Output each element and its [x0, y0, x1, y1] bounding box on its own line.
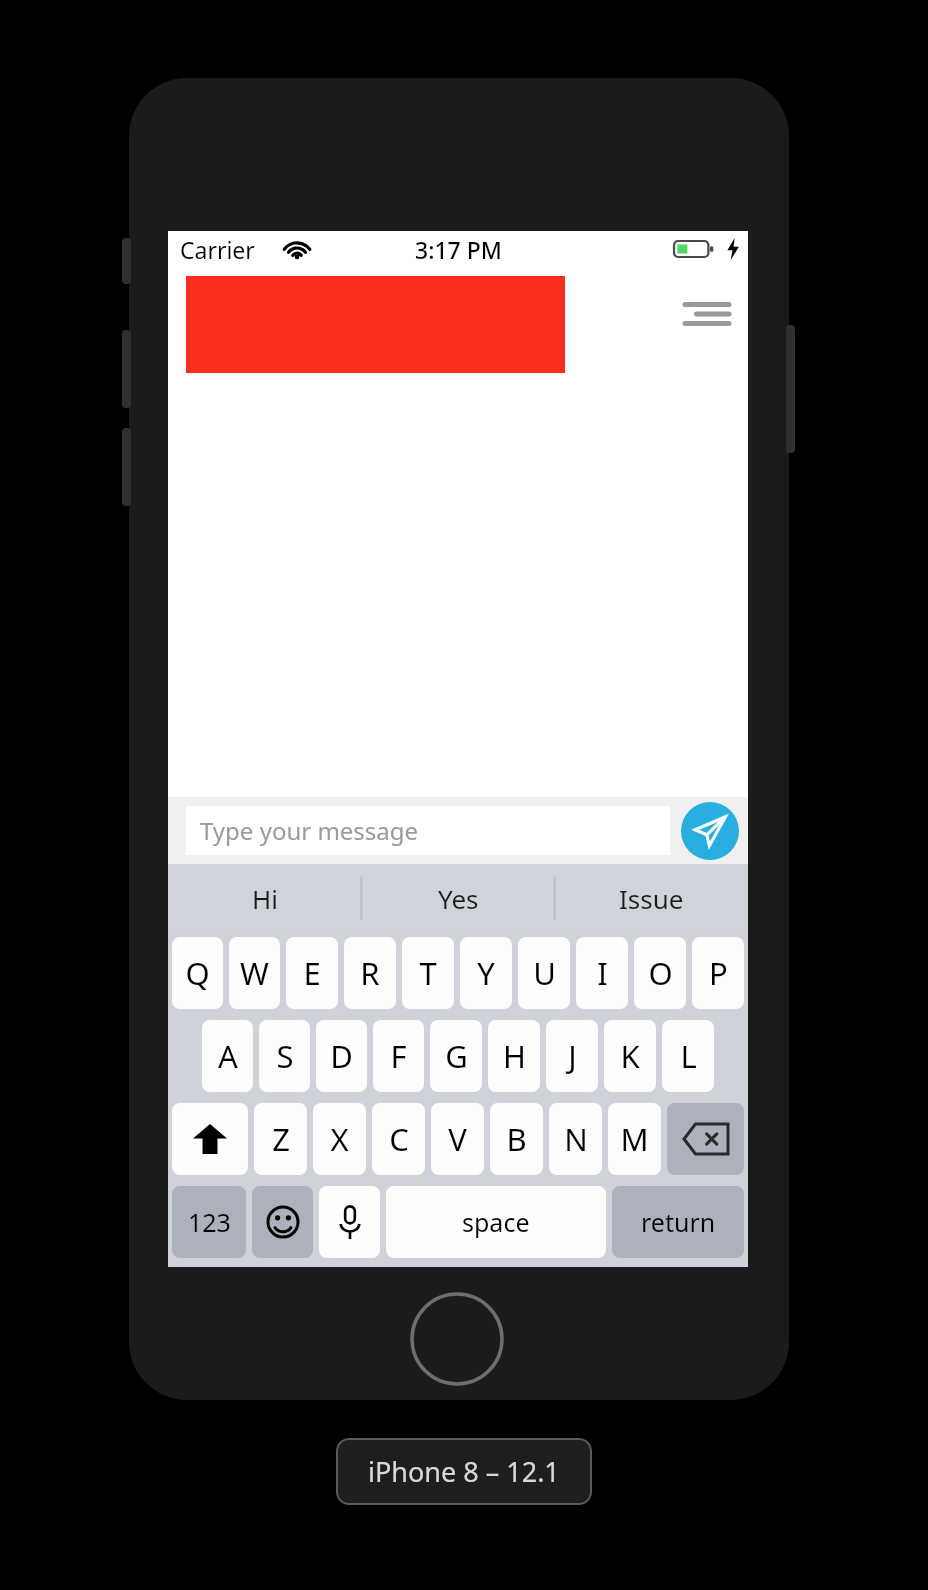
button[interactable]: O	[634, 937, 686, 1009]
staticText: Hi	[252, 881, 278, 916]
staticText: K	[620, 1035, 640, 1077]
button[interactable]: Backspace	[667, 1103, 744, 1175]
staticText: Type your message	[200, 814, 419, 847]
button[interactable]: X	[313, 1103, 366, 1175]
staticText: space	[462, 1205, 530, 1239]
staticText: Y	[477, 952, 495, 994]
staticText: A	[218, 1035, 238, 1077]
staticText: J	[568, 1035, 577, 1077]
staticText: Issue	[619, 881, 684, 916]
button[interactable]: M	[608, 1103, 661, 1175]
staticText: iPhone 8 – 12.1	[368, 1453, 560, 1490]
button[interactable]: F	[373, 1020, 424, 1092]
button[interactable]: L	[662, 1020, 714, 1092]
staticText: E	[303, 952, 321, 994]
button[interactable]: Q	[172, 937, 223, 1009]
button[interactable]: Z	[254, 1103, 307, 1175]
staticText: 3:17 PM	[415, 234, 502, 265]
button[interactable]: D	[316, 1020, 367, 1092]
staticText: F	[390, 1035, 407, 1077]
button[interactable]: E	[286, 937, 338, 1009]
staticText: R	[360, 952, 380, 994]
button[interactable]: W	[229, 937, 280, 1009]
staticText: W	[240, 952, 269, 994]
button[interactable]: 123	[172, 1186, 246, 1258]
button[interactable]: U	[518, 937, 570, 1009]
staticText: S	[276, 1035, 294, 1077]
button[interactable]: C	[372, 1103, 425, 1175]
staticText: B	[506, 1118, 527, 1160]
staticText: Z	[272, 1118, 290, 1160]
button[interactable]: Shift	[172, 1103, 248, 1175]
staticText: Yes	[438, 881, 479, 916]
button[interactable]: N	[549, 1103, 602, 1175]
button[interactable]: S	[259, 1020, 310, 1092]
button[interactable]: T	[402, 937, 454, 1009]
button[interactable]: Y	[460, 937, 512, 1009]
staticText: P	[709, 952, 728, 994]
staticText: I	[597, 952, 608, 994]
staticText: D	[330, 1035, 353, 1077]
button[interactable]: iPhone 8 – 12.1	[368, 1453, 560, 1490]
staticText: H	[503, 1035, 526, 1077]
button[interactable]: P	[692, 937, 744, 1009]
button[interactable]: R	[344, 937, 396, 1009]
button[interactable]: Issue	[555, 864, 748, 932]
button[interactable]: I	[576, 937, 628, 1009]
button[interactable]: V	[431, 1103, 484, 1175]
button[interactable]: H	[488, 1020, 540, 1092]
staticText: L	[680, 1035, 697, 1077]
button[interactable]: space	[386, 1186, 606, 1258]
staticText: 123	[188, 1205, 231, 1239]
staticText: X	[330, 1118, 349, 1160]
staticText: T	[419, 952, 437, 994]
staticText: O	[648, 952, 673, 994]
button[interactable]: Dictation	[319, 1186, 380, 1258]
button[interactable]: J	[546, 1020, 598, 1092]
staticText: Q	[185, 952, 210, 994]
button[interactable]: Send	[681, 802, 739, 860]
staticText: G	[445, 1035, 468, 1077]
button[interactable]: B	[490, 1103, 543, 1175]
button[interactable]: return	[612, 1186, 744, 1258]
staticText: C	[389, 1118, 409, 1160]
staticText: U	[533, 952, 556, 994]
button[interactable]: Menu	[674, 281, 740, 347]
button[interactable]: Hi	[168, 864, 362, 932]
button[interactable]: K	[604, 1020, 656, 1092]
button[interactable]: Type your message	[186, 806, 670, 855]
staticText: M	[620, 1118, 649, 1160]
button[interactable]: Emoji	[252, 1186, 313, 1258]
button[interactable]: A	[202, 1020, 253, 1092]
button[interactable]: Yes	[362, 864, 555, 932]
staticText: return	[641, 1205, 716, 1239]
staticText: N	[564, 1118, 588, 1160]
button[interactable]: G	[430, 1020, 482, 1092]
staticText: V	[448, 1118, 467, 1160]
staticText: Carrier	[180, 234, 255, 265]
